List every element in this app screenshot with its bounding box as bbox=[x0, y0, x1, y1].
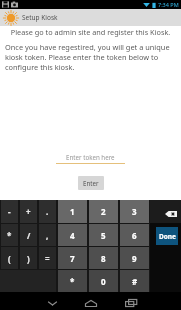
button[interactable]: ( bbox=[1, 247, 18, 269]
staticText: - bbox=[8, 206, 11, 217]
button[interactable]: ) bbox=[20, 247, 37, 269]
button[interactable]: . bbox=[39, 200, 56, 223]
button[interactable]: Home bbox=[79, 292, 103, 310]
staticText: 0 bbox=[101, 276, 106, 287]
button[interactable]: 5 bbox=[89, 224, 118, 246]
button[interactable]: 1 bbox=[58, 200, 87, 223]
staticText: Enter token here bbox=[66, 153, 115, 161]
button[interactable]: 8 bbox=[89, 247, 118, 269]
staticText: 1 bbox=[70, 206, 75, 217]
staticText: ( bbox=[8, 253, 11, 264]
staticText: 7 bbox=[70, 253, 75, 264]
button[interactable]: 2 bbox=[89, 200, 118, 223]
button[interactable]: , bbox=[39, 224, 56, 246]
button[interactable]: 0 bbox=[89, 270, 118, 292]
staticText: 9 bbox=[132, 253, 137, 264]
staticText: + bbox=[26, 206, 31, 217]
button[interactable]: 9 bbox=[120, 247, 149, 269]
staticText: * bbox=[7, 230, 12, 241]
staticText: 8 bbox=[101, 253, 106, 264]
button[interactable]: Setup Kiosk bbox=[0, 9, 181, 26]
button[interactable]: / bbox=[20, 224, 37, 246]
staticText: ) bbox=[27, 253, 30, 264]
staticText: 4 bbox=[70, 230, 75, 241]
button[interactable]: # bbox=[120, 270, 149, 292]
staticText: / bbox=[27, 230, 31, 241]
button[interactable]: * bbox=[1, 224, 18, 246]
button[interactable]: 6 bbox=[120, 224, 149, 246]
button[interactable]: Recents bbox=[119, 292, 143, 310]
button[interactable]: 7 bbox=[58, 247, 87, 269]
staticText: . bbox=[46, 206, 49, 217]
button[interactable]: + bbox=[20, 200, 37, 223]
staticText: Setup Kiosk bbox=[22, 13, 58, 22]
staticText: Done bbox=[159, 232, 176, 241]
button[interactable]: Enter bbox=[78, 176, 104, 190]
button[interactable]: Hide keyboard bbox=[40, 292, 64, 310]
button[interactable]: = bbox=[39, 247, 56, 269]
button[interactable]: * bbox=[58, 270, 87, 292]
button[interactable]: - bbox=[1, 200, 18, 223]
staticText: 5 bbox=[101, 230, 106, 241]
staticText: 3 bbox=[132, 206, 137, 217]
button[interactable]: Done bbox=[156, 227, 178, 245]
button[interactable]: Enter token here bbox=[56, 153, 125, 164]
staticText: * bbox=[70, 276, 75, 287]
staticText: = bbox=[45, 253, 50, 264]
staticText: 6 bbox=[132, 230, 137, 241]
staticText: , bbox=[46, 230, 49, 241]
staticText: 7:34 PM bbox=[158, 1, 179, 8]
staticText: Please go to admin site and register thi… bbox=[0, 27, 181, 37]
button[interactable]: 3 bbox=[120, 200, 149, 223]
staticText: 2 bbox=[101, 206, 106, 217]
staticText: # bbox=[132, 276, 138, 287]
staticText: Enter bbox=[83, 179, 99, 187]
button[interactable]: Backspace bbox=[150, 200, 181, 223]
button[interactable]: 4 bbox=[58, 224, 87, 246]
staticText: Once you have regestired, you will get a… bbox=[5, 42, 175, 72]
